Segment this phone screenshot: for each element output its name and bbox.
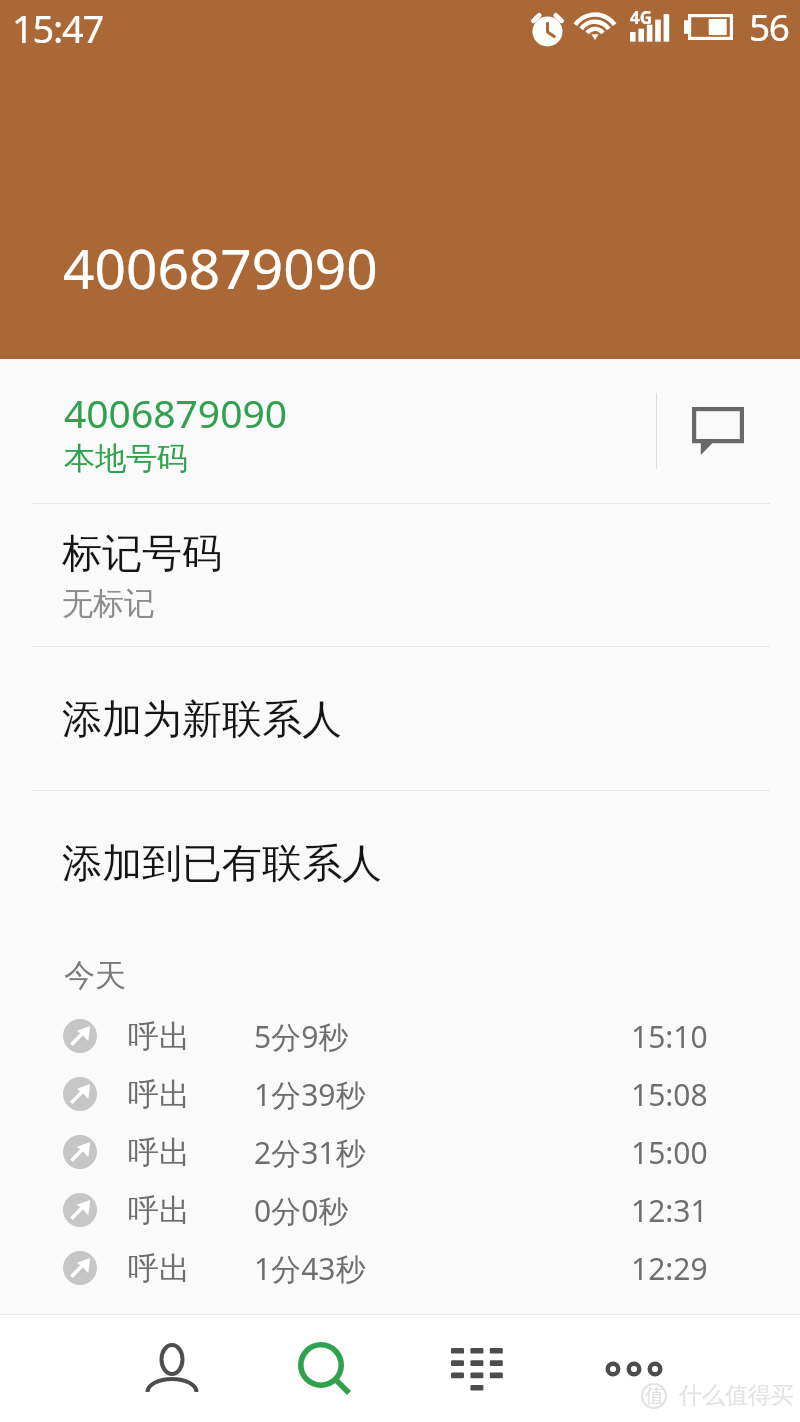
staticText: 1分43秒 <box>254 1248 366 1289</box>
staticText: 15:10 <box>631 1016 708 1057</box>
button[interactable]: Dialpad <box>400 1314 553 1422</box>
button[interactable]: 呼出 <box>0 1007 800 1065</box>
staticText: 1分39秒 <box>254 1074 366 1115</box>
staticText: 4G <box>630 6 653 29</box>
staticText: 呼出 <box>128 1133 190 1172</box>
staticText: 无标记 <box>62 584 155 623</box>
staticText: 15:00 <box>631 1132 708 1173</box>
button[interactable]: 添加到已有联系人 <box>0 791 800 934</box>
button[interactable]: 标记号码 <box>0 504 800 646</box>
staticText: 值 <box>645 1384 664 1408</box>
staticText: 今天 <box>64 956 126 995</box>
staticText: 添加到已有联系人 <box>62 838 382 888</box>
button[interactable]: Send message <box>657 359 800 503</box>
staticText: 12:29 <box>631 1248 708 1289</box>
staticText: 4006879090 <box>64 386 288 439</box>
button[interactable]: Search <box>248 1314 400 1422</box>
staticText: 2分31秒 <box>254 1132 366 1173</box>
button[interactable]: 呼出 <box>0 1065 800 1123</box>
staticText: 15:47 <box>12 2 104 54</box>
staticText: 呼出 <box>128 1017 190 1056</box>
staticText: 4006879090 <box>63 230 378 305</box>
button[interactable]: More options <box>553 1314 706 1422</box>
staticText: 12:31 <box>631 1190 708 1231</box>
button[interactable]: 4006879090 <box>0 359 656 503</box>
button[interactable]: 呼出 <box>0 1239 800 1297</box>
staticText: 56 <box>749 1 789 51</box>
staticText: 什么值得买 <box>679 1381 794 1410</box>
staticText: 本地号码 <box>64 439 188 478</box>
button[interactable]: Contacts <box>96 1314 248 1422</box>
staticText: 标记号码 <box>62 528 222 578</box>
staticText: 15:08 <box>631 1074 708 1115</box>
staticText: 添加为新联系人 <box>62 694 342 744</box>
staticText: 呼出 <box>128 1191 190 1230</box>
staticText: 呼出 <box>128 1075 190 1114</box>
staticText: 5分9秒 <box>254 1016 349 1057</box>
staticText: 呼出 <box>128 1249 190 1288</box>
button[interactable]: 添加为新联系人 <box>0 647 800 790</box>
button[interactable]: 呼出 <box>0 1181 800 1239</box>
staticText: 0分0秒 <box>254 1190 349 1231</box>
button[interactable]: 呼出 <box>0 1123 800 1181</box>
